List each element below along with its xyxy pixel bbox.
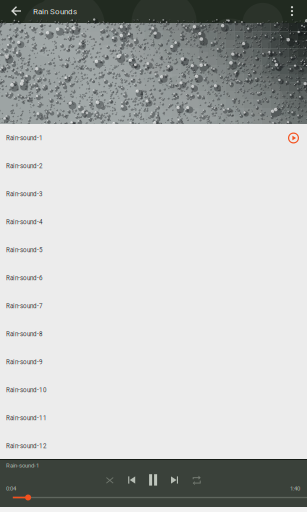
staticText: Rain-sound-1 <box>6 134 43 142</box>
button[interactable]: Rain-sound-11 <box>0 404 307 432</box>
button[interactable]: Repeat <box>191 473 203 487</box>
button[interactable]: More options <box>277 0 307 23</box>
button[interactable]: Rain-sound-8 <box>0 320 307 348</box>
button[interactable]: Rain-sound-9 <box>0 348 307 376</box>
button[interactable]: Rain-sound-6 <box>0 264 307 292</box>
staticText: Rain-sound-8 <box>6 330 43 338</box>
staticText: Rain-sound-9 <box>6 358 43 366</box>
button[interactable]: Rain-sound-3 <box>0 180 307 208</box>
button[interactable]: Rain-sound-5 <box>0 236 307 264</box>
button[interactable]: Rain-sound-2 <box>0 152 307 180</box>
staticText: Rain Sounds <box>33 7 77 16</box>
staticText: Rain-sound-3 <box>6 190 43 198</box>
button[interactable]: Next track <box>169 473 181 487</box>
staticText: 1:40 <box>290 485 300 492</box>
staticText: Rain-sound-1 <box>6 462 39 469</box>
staticText: 0:04 <box>6 485 16 492</box>
staticText: Rain-sound-7 <box>6 302 43 310</box>
staticText: Rain-sound-2 <box>6 162 43 170</box>
button[interactable]: Pause <box>147 473 159 487</box>
staticText: Rain-sound-10 <box>6 386 47 394</box>
staticText: Rain-sound-12 <box>6 442 47 450</box>
button[interactable]: Rain-sound-1 <box>0 124 307 152</box>
staticText: Rain-sound-4 <box>6 218 43 226</box>
button[interactable]: Rain-sound-7 <box>0 292 307 320</box>
button[interactable]: Previous track <box>126 473 138 487</box>
staticText: Rain-sound-11 <box>6 414 47 422</box>
button[interactable]: Back <box>0 0 33 23</box>
button[interactable]: Rain-sound-12 <box>0 432 307 460</box>
button[interactable]: Shuffle <box>104 473 116 487</box>
staticText: Rain-sound-5 <box>6 246 43 254</box>
staticText: Rain-sound-6 <box>6 274 43 282</box>
button[interactable]: Rain-sound-4 <box>0 208 307 236</box>
button[interactable]: Rain-sound-10 <box>0 376 307 404</box>
